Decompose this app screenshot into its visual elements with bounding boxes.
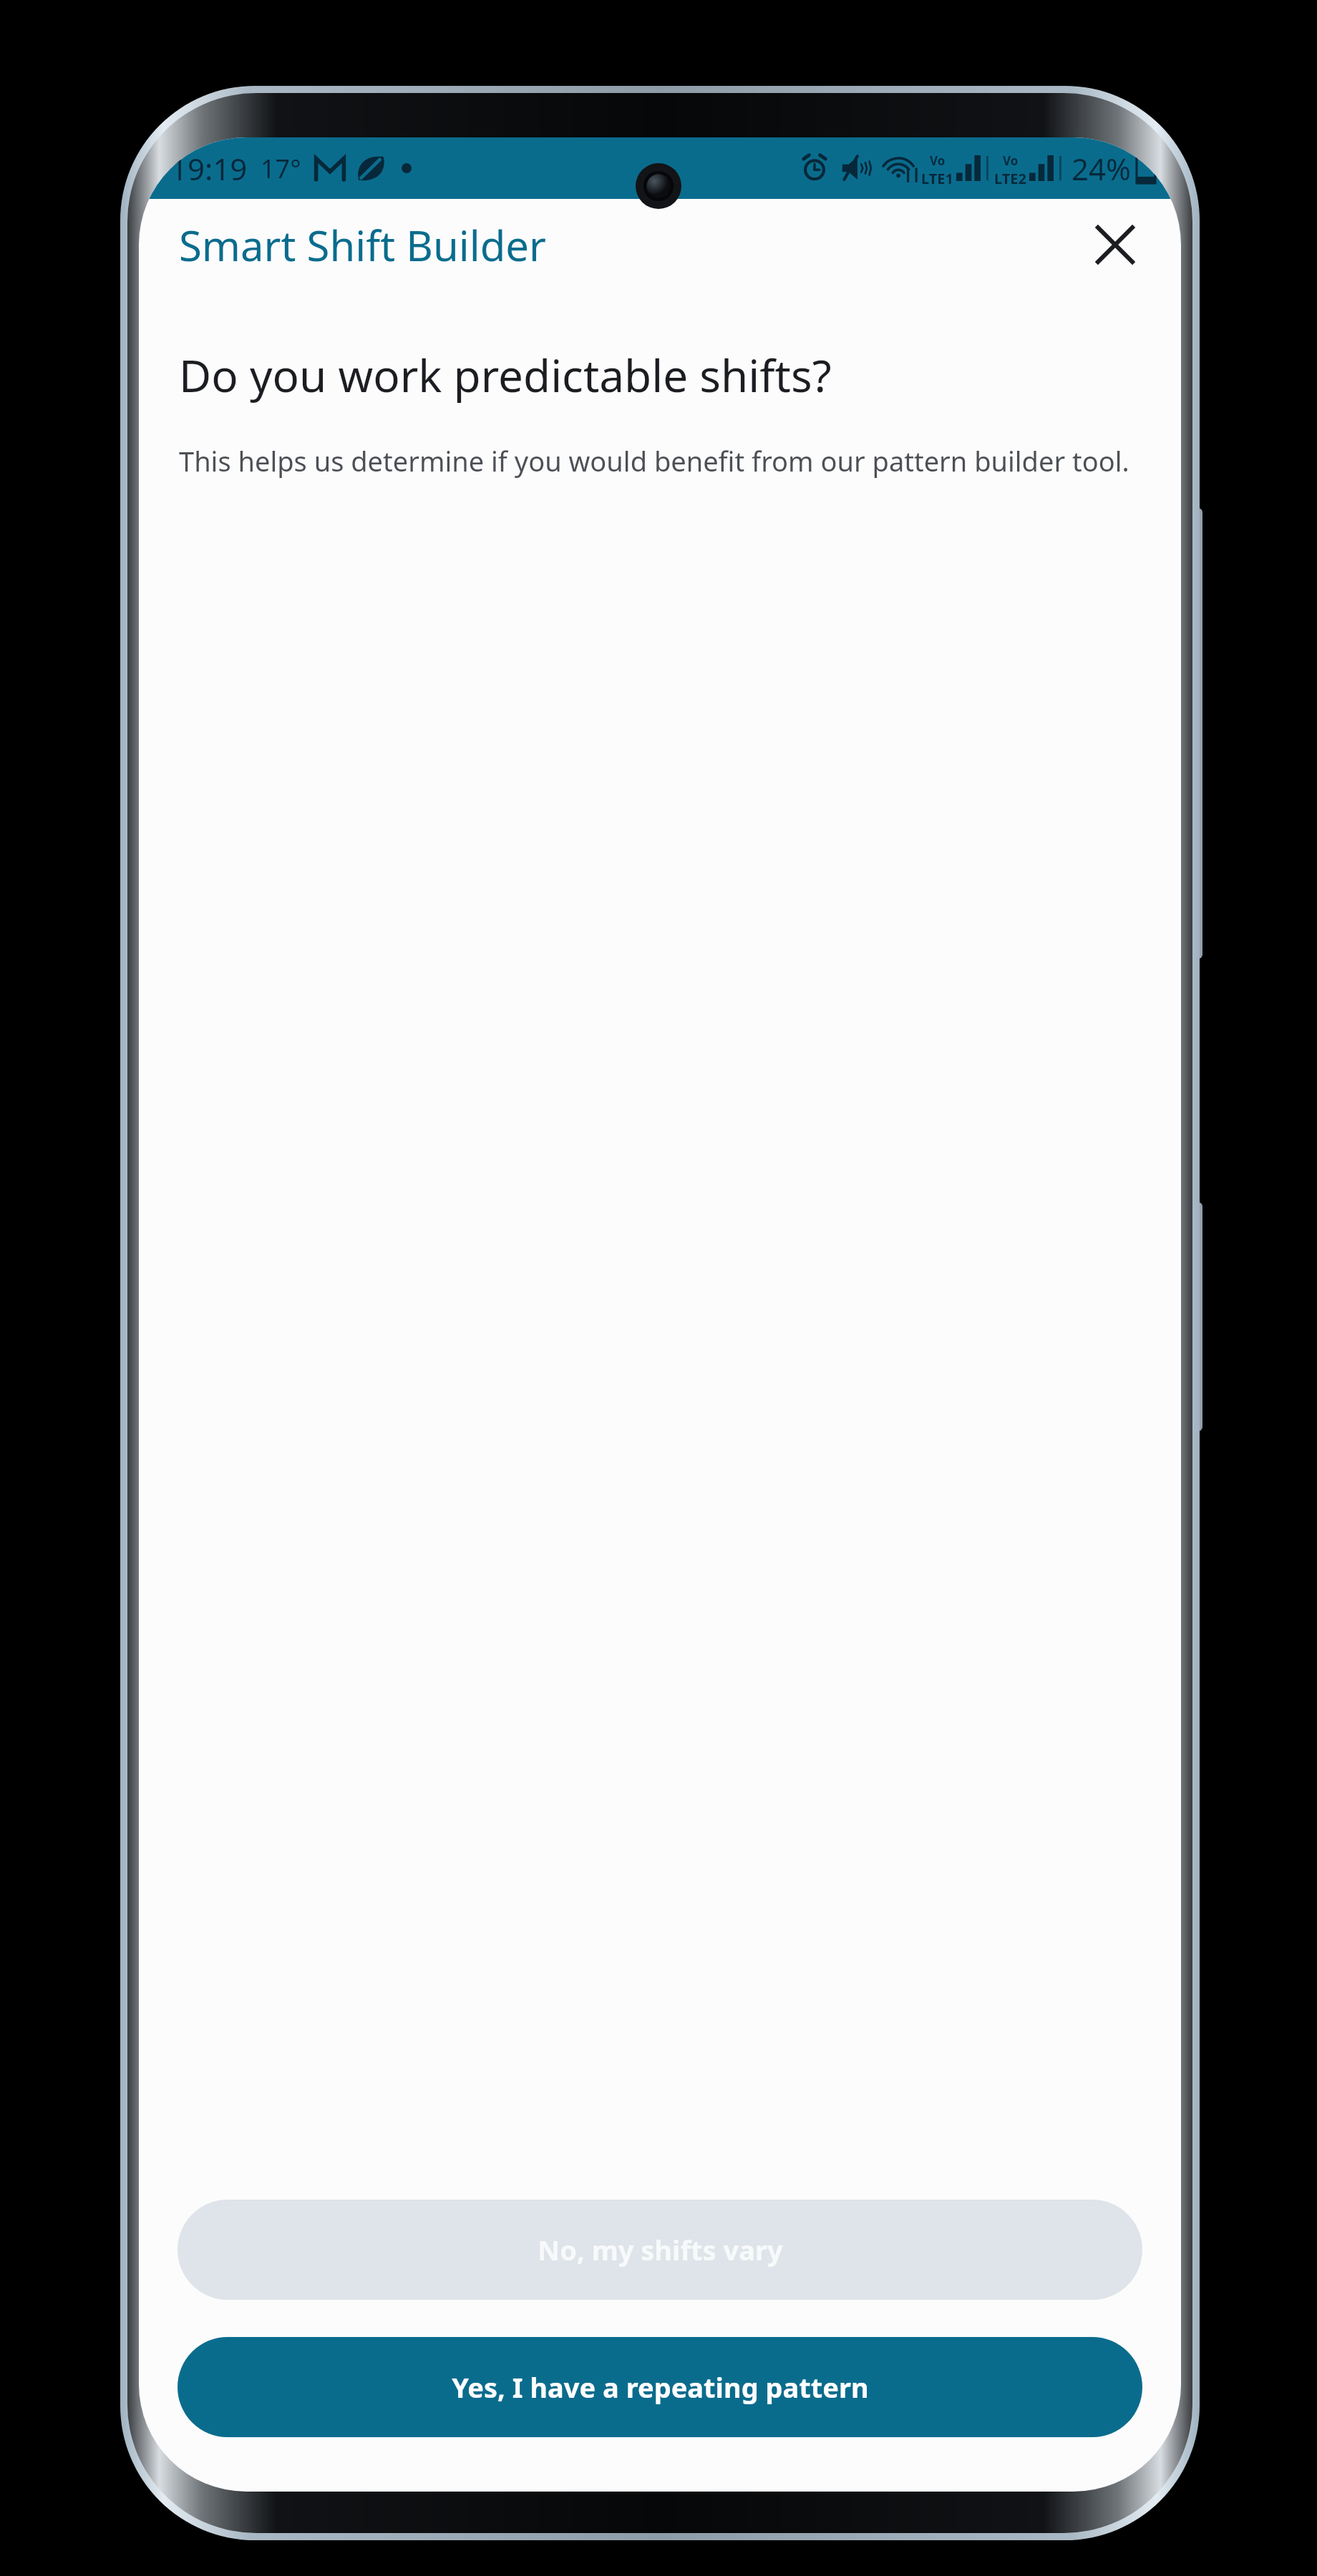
- button[interactable]: No, my shifts vary: [178, 2200, 1142, 2300]
- staticText: 19:19: [170, 148, 248, 189]
- button[interactable]: Close: [1072, 202, 1158, 288]
- staticText: Yes, I have a repeating pattern: [452, 2368, 869, 2406]
- staticText: This helps us determine if you would ben…: [179, 442, 1129, 479]
- button[interactable]: Yes, I have a repeating pattern: [178, 2337, 1142, 2437]
- staticText: 24%: [1071, 148, 1131, 189]
- staticText: Vo: [930, 152, 946, 169]
- staticText: 17°: [261, 151, 301, 186]
- staticText: Do you work predictable shifts?: [179, 345, 832, 405]
- staticText: LTE1: [921, 169, 953, 184]
- staticText: Smart Shift Builder: [179, 217, 547, 273]
- staticText: Vo: [1003, 152, 1019, 169]
- staticText: No, my shifts vary: [538, 2231, 783, 2268]
- staticText: LTE2: [994, 169, 1026, 184]
